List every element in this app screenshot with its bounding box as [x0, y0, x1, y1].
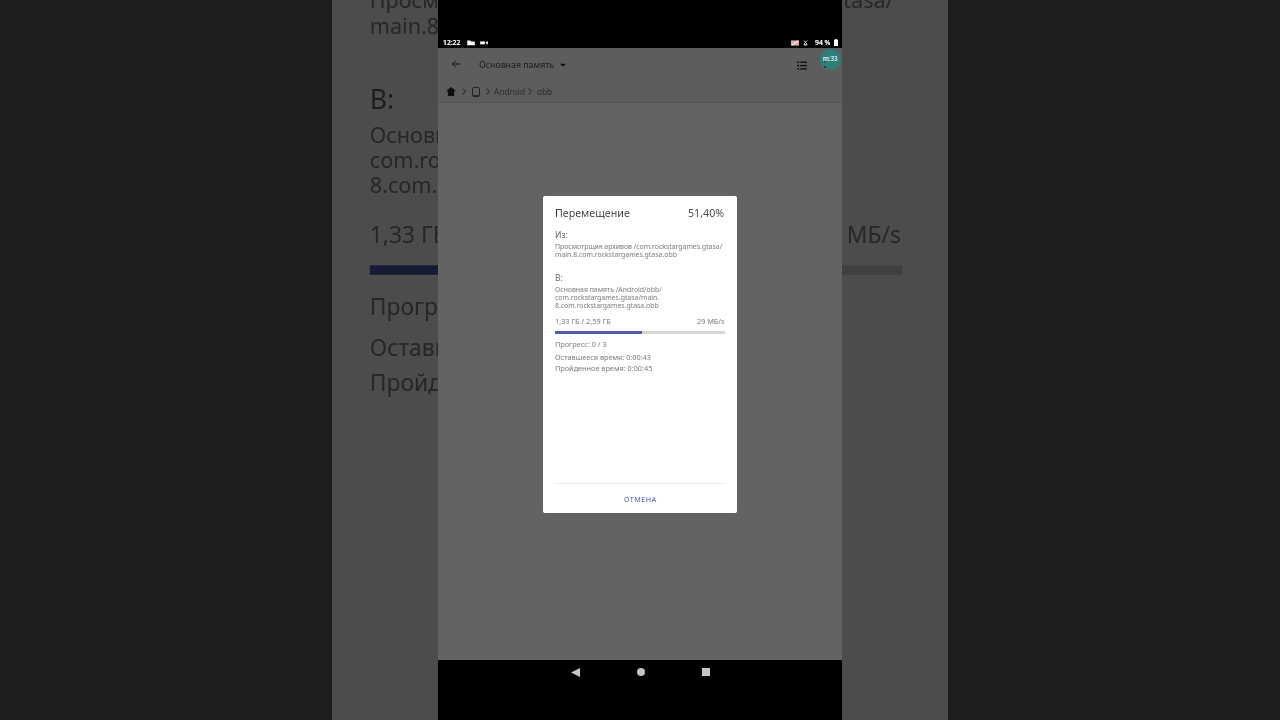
- staticText: Просмотрщик архивов /com.rockstargames.g…: [370, 0, 896, 40]
- button[interactable]: Back: [444, 52, 468, 76]
- button[interactable]: Home: [608, 660, 673, 684]
- staticText: Перемещение: [555, 206, 630, 221]
- staticText: В:: [370, 80, 395, 118]
- staticText: Оставшееся время: 0:00:43: [555, 352, 651, 362]
- staticText: Оставшееся время: 0:00:43: [370, 331, 671, 362]
- button[interactable]: Home: [442, 81, 460, 102]
- button[interactable]: ОТМЕНА: [543, 484, 737, 513]
- staticText: Пройденное время: 0:00:45: [370, 366, 677, 397]
- staticText: 12:22: [443, 38, 461, 47]
- button[interactable]: Device storage: [468, 81, 483, 102]
- staticText: 29 МБ/s: [697, 316, 725, 326]
- staticText: Прогресс: 0 / 3: [370, 290, 533, 322]
- staticText: Из:: [555, 229, 568, 241]
- staticText: ОТМЕНА: [624, 494, 657, 504]
- staticText: Основная память /Android/obb/ com.rockst…: [370, 121, 705, 199]
- staticText: 51,40%: [688, 206, 725, 221]
- staticText: Основная память /Android/obb/ com.rockst…: [555, 285, 662, 310]
- staticText: 1,33 ГБ / 2,59 ГБ: [370, 218, 545, 250]
- staticText: 1,33 ГБ / 2,59 ГБ: [555, 316, 611, 326]
- button[interactable]: Account: [820, 49, 841, 70]
- button[interactable]: Android: [494, 86, 526, 97]
- staticText: m:33: [823, 54, 838, 62]
- staticText: 29 МБ/s: [815, 218, 902, 250]
- button[interactable]: Основная память: [479, 48, 566, 81]
- staticText: 94 %: [815, 38, 831, 47]
- staticText: Основная память: [479, 59, 555, 71]
- button[interactable]: obb: [537, 86, 553, 97]
- staticText: Просмотрщик архивов /com.rockstargames.g…: [555, 242, 723, 259]
- button[interactable]: Recent apps: [673, 660, 738, 684]
- button[interactable]: Change view: [788, 51, 815, 78]
- staticText: Прогресс: 0 / 3: [555, 339, 607, 349]
- staticText: В:: [555, 272, 563, 284]
- button[interactable]: Back: [543, 660, 608, 684]
- staticText: Пройденное время: 0:00:45: [555, 363, 653, 373]
